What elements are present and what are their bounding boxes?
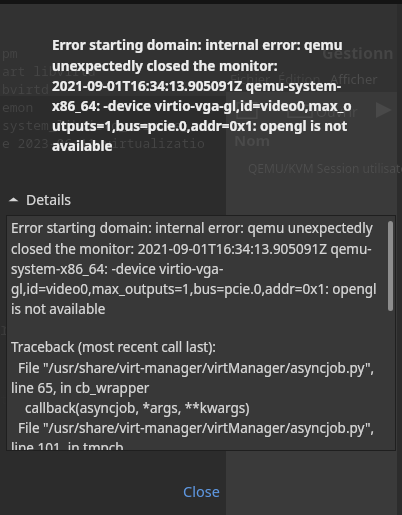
staticText: Traceback (most recent call last): File … (11, 338, 378, 451)
staticText: tualization daemo (40, 370, 173, 388)
staticText: Close (183, 481, 220, 501)
staticText: Fichier (230, 70, 271, 88)
staticText: Nom (234, 130, 271, 150)
staticText: system_libvirtd_service_ (2, 116, 190, 134)
staticText: rvice (0, 318, 49, 340)
button[interactable]: Close (157, 473, 246, 509)
staticText: e 2023-06-11 virtualizatio (2, 134, 205, 152)
staticText: Afficher (330, 70, 378, 88)
staticText: bvirtd (2, 80, 49, 98)
staticText: Ouvrir (316, 102, 358, 121)
staticText: emon (2, 98, 34, 116)
staticText: Error starting domain: internal error: q… (11, 219, 378, 318)
staticText: Gestionn (322, 42, 394, 64)
staticText: pm (2, 44, 18, 62)
button[interactable]: Details (0, 186, 402, 212)
staticText: Error starting domain: internal error: q… (52, 36, 352, 155)
staticText: ta d virtualization (0, 390, 149, 408)
staticText: art libvirtd (2, 62, 96, 80)
staticText: Details (26, 190, 71, 209)
staticText: Édition (278, 70, 321, 88)
staticText: QEMU/KVM Session utilisateu (248, 160, 402, 176)
